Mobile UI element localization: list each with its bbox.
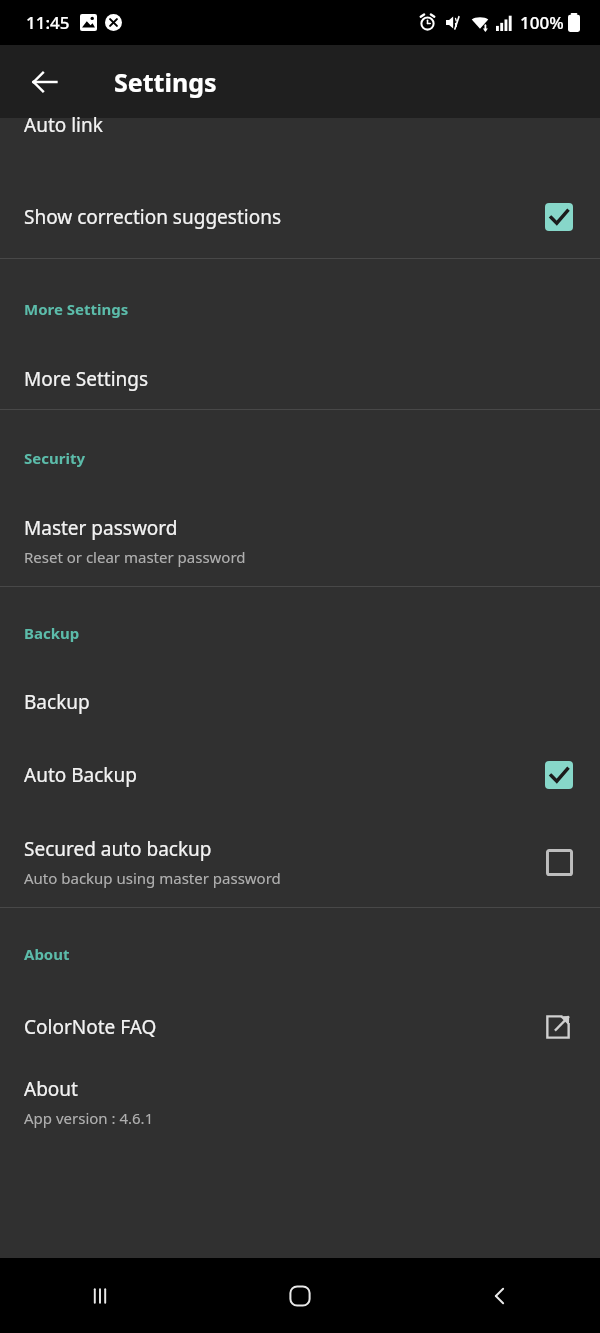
staticText: 100% [520,11,564,34]
staticText: Master password [24,515,178,541]
button[interactable]: Home [200,1258,400,1333]
staticText: Show correction suggestions [24,204,544,230]
staticText: Backup [24,689,90,715]
staticText: About [24,944,70,964]
button[interactable]: ColorNote FAQ [0,992,600,1062]
button[interactable]: Secured auto backup [0,817,600,907]
button[interactable]: Back [22,59,68,105]
staticText: Security [24,448,85,468]
staticText: 11:45 [26,11,70,34]
button[interactable]: Auto link [0,118,600,175]
staticText: More Settings [24,299,129,319]
button[interactable]: Show correction suggestions [0,175,600,258]
other: Open ColorNote FAQ [542,1011,574,1043]
button[interactable]: Backup [0,671,600,733]
staticText: Settings [114,65,217,99]
staticText: Secured auto backup [24,836,212,862]
button[interactable]: More Settings [0,349,600,409]
staticText: About [24,1076,78,1102]
button[interactable]: Auto Backup [0,733,600,817]
button[interactable]: Back [400,1258,600,1333]
staticText: ColorNote FAQ [24,1014,542,1040]
staticText: App version : 4.6.1 [24,1108,154,1128]
staticText: Auto Backup [24,762,544,788]
staticText: Auto backup using master password [24,868,281,888]
other: Unchecked [544,847,574,877]
other: Checked [544,760,574,790]
button[interactable]: About [0,1062,600,1142]
staticText: Reset or clear master password [24,547,246,567]
staticText: Backup [24,623,80,643]
button[interactable]: Recent apps [0,1258,200,1333]
other: Checked [544,202,574,232]
button[interactable]: Master password [0,496,600,586]
staticText: Auto link [24,112,103,138]
staticText: More Settings [24,366,149,392]
